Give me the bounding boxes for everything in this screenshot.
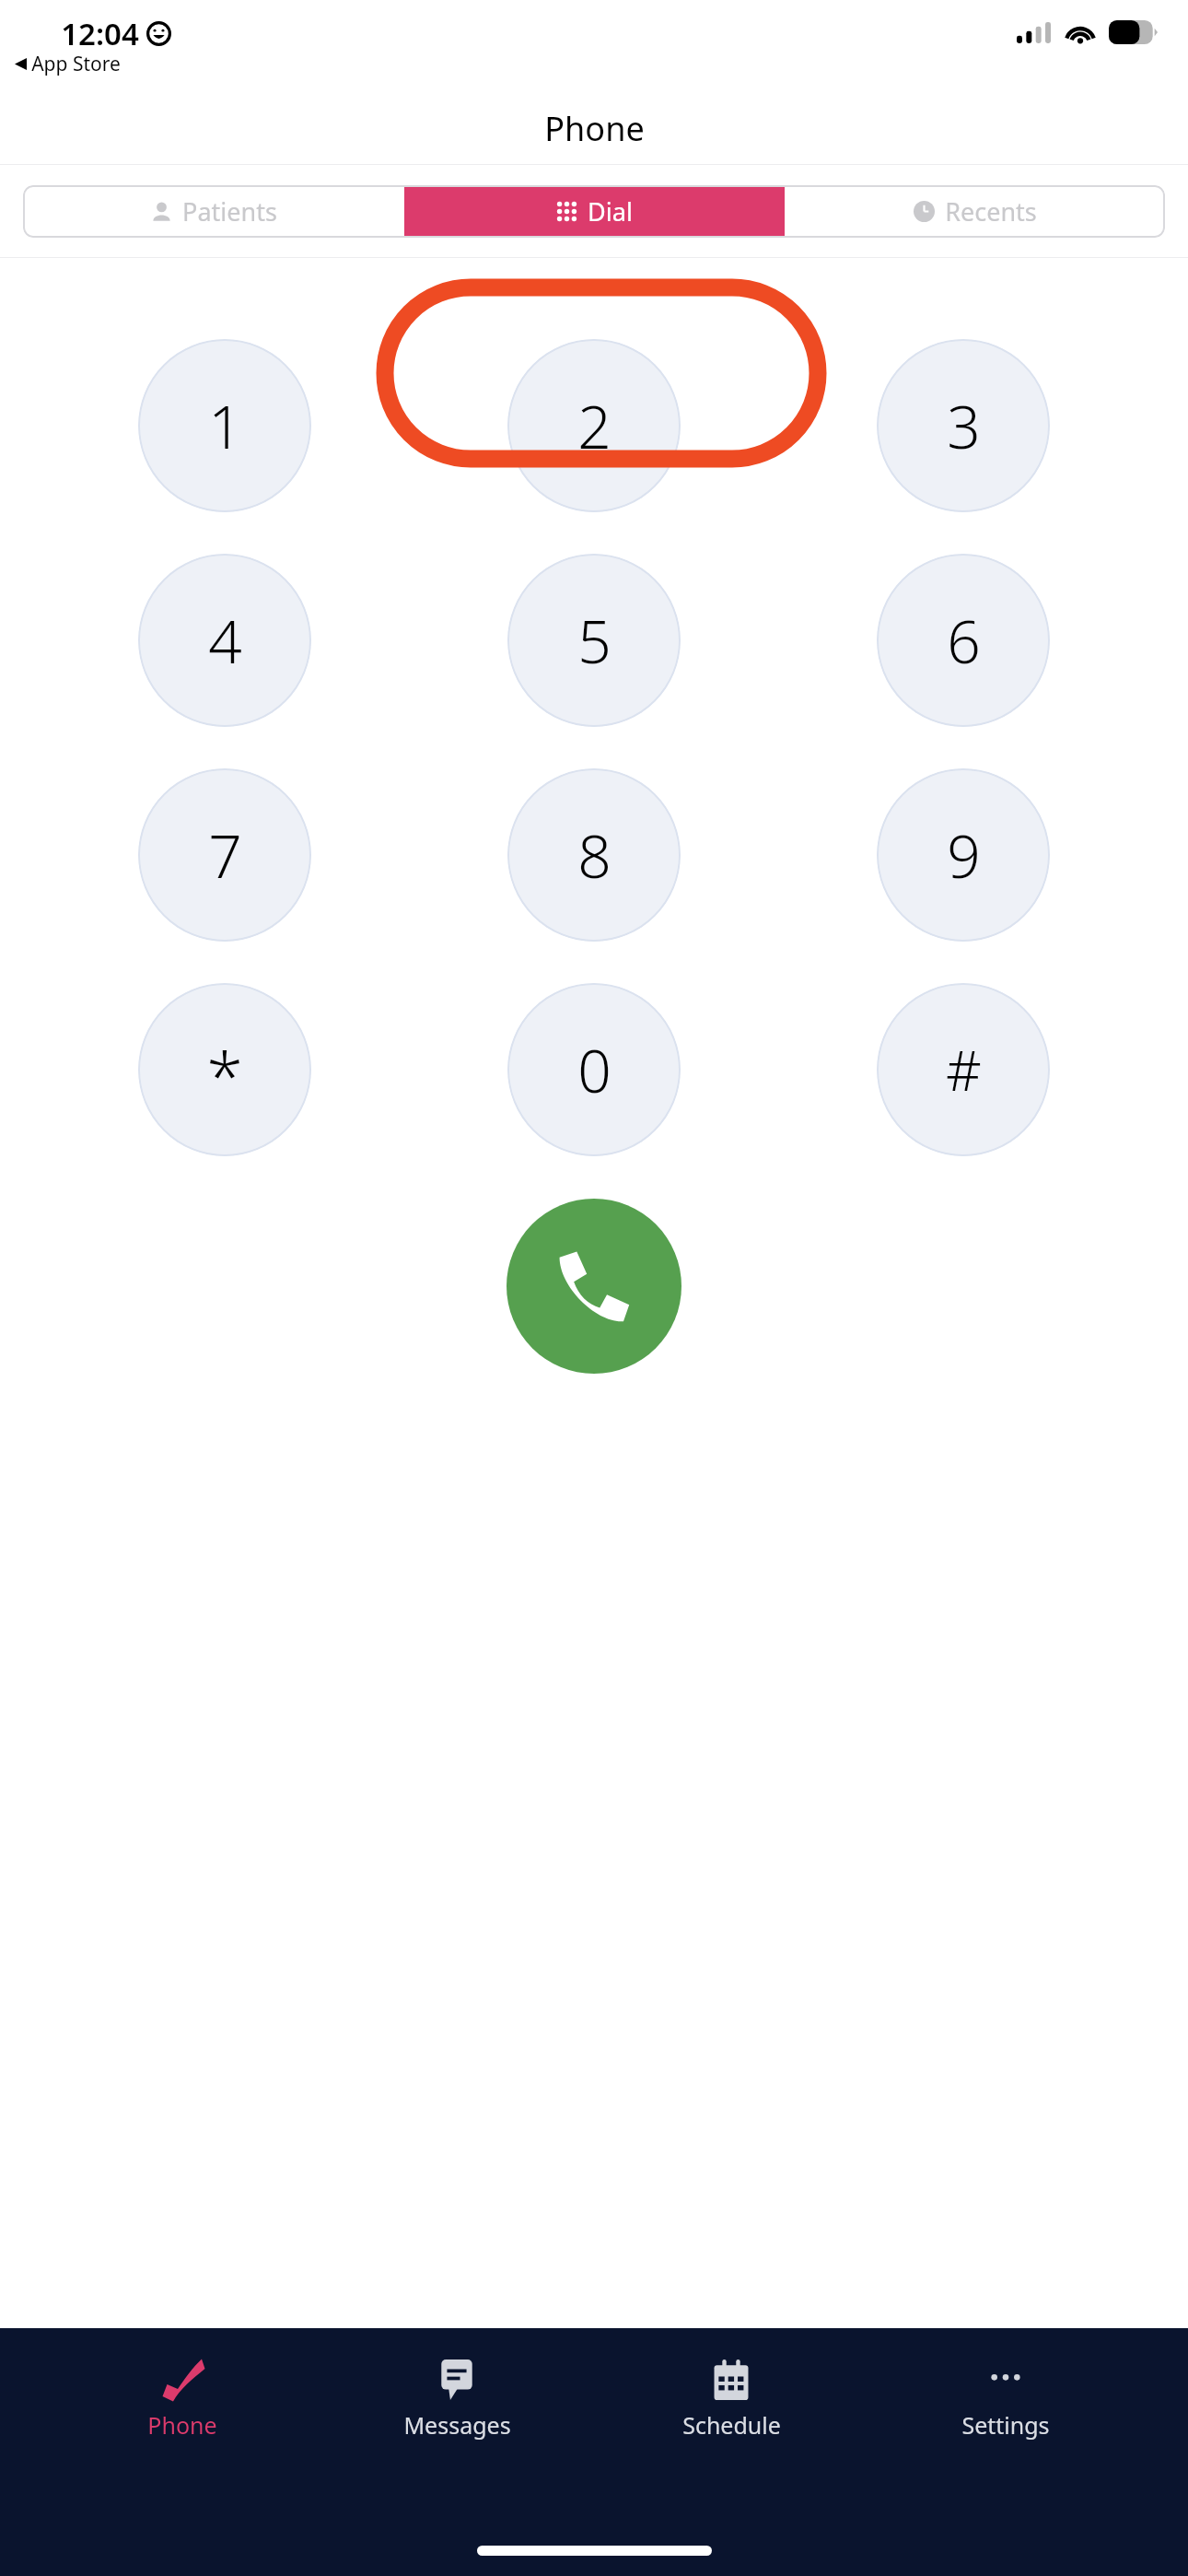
button[interactable]: Recents xyxy=(785,185,1165,238)
button[interactable]: 2 xyxy=(507,339,681,512)
button[interactable]: Call xyxy=(507,1199,681,1374)
button[interactable]: # xyxy=(877,983,1050,1156)
staticText: 2 xyxy=(577,386,611,466)
staticText: 8 xyxy=(577,815,611,896)
button[interactable]: 5 xyxy=(507,554,681,727)
staticText: Settings xyxy=(961,2409,1050,2441)
staticText: 0 xyxy=(577,1030,611,1110)
staticText: 1 xyxy=(208,386,242,466)
button[interactable]: Dial xyxy=(404,185,785,238)
button[interactable]: Phone xyxy=(90,2352,274,2444)
button[interactable]: 0 xyxy=(507,983,681,1156)
staticText: Phone xyxy=(544,106,645,151)
staticText: Phone xyxy=(147,2409,217,2441)
staticText: Dial xyxy=(588,194,633,228)
staticText: Patients xyxy=(182,194,277,228)
staticText: 9 xyxy=(947,815,981,896)
button[interactable]: 8 xyxy=(507,768,681,942)
button[interactable]: * xyxy=(138,983,311,1156)
button[interactable]: Settings xyxy=(914,2352,1098,2444)
staticText: * xyxy=(206,1030,243,1120)
button[interactable]: 4 xyxy=(138,554,311,727)
button[interactable]: Patients xyxy=(23,185,404,238)
staticText: 6 xyxy=(947,601,981,681)
staticText: Schedule xyxy=(682,2409,781,2441)
staticText: 3 xyxy=(947,386,981,466)
button[interactable]: 7 xyxy=(138,768,311,942)
button[interactable]: Schedule xyxy=(639,2352,823,2444)
button[interactable]: 3 xyxy=(877,339,1050,512)
staticText: # xyxy=(946,1032,982,1107)
staticText: 7 xyxy=(208,815,242,896)
staticText: 12:04 xyxy=(61,13,139,54)
button[interactable]: Messages xyxy=(365,2352,549,2444)
button[interactable]: 9 xyxy=(877,768,1050,942)
button[interactable]: 1 xyxy=(138,339,311,512)
staticText: Recents xyxy=(945,194,1037,228)
staticText: 4 xyxy=(208,601,242,681)
staticText: Messages xyxy=(403,2409,511,2441)
staticText: 5 xyxy=(577,601,611,681)
staticText: App Store xyxy=(31,51,121,77)
button[interactable]: 6 xyxy=(877,554,1050,727)
